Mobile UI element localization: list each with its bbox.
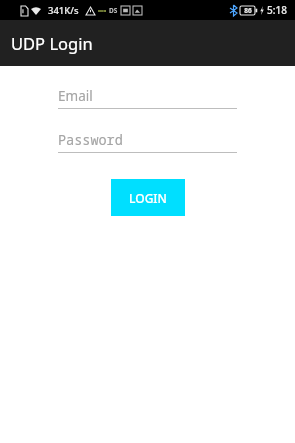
staticText: Password bbox=[58, 131, 123, 149]
staticText: LOGIN bbox=[129, 190, 167, 206]
staticText: 86 bbox=[244, 6, 252, 15]
button[interactable]: Password input field bbox=[58, 130, 237, 153]
button[interactable]: Email input field bbox=[58, 86, 237, 109]
staticText: 341K/s bbox=[48, 4, 79, 17]
button[interactable]: LOGIN bbox=[111, 179, 185, 216]
staticText: UDP Login bbox=[11, 32, 93, 54]
staticText: Email bbox=[58, 87, 93, 105]
staticText: 5:18 bbox=[267, 3, 287, 17]
staticText: DS bbox=[109, 6, 118, 15]
